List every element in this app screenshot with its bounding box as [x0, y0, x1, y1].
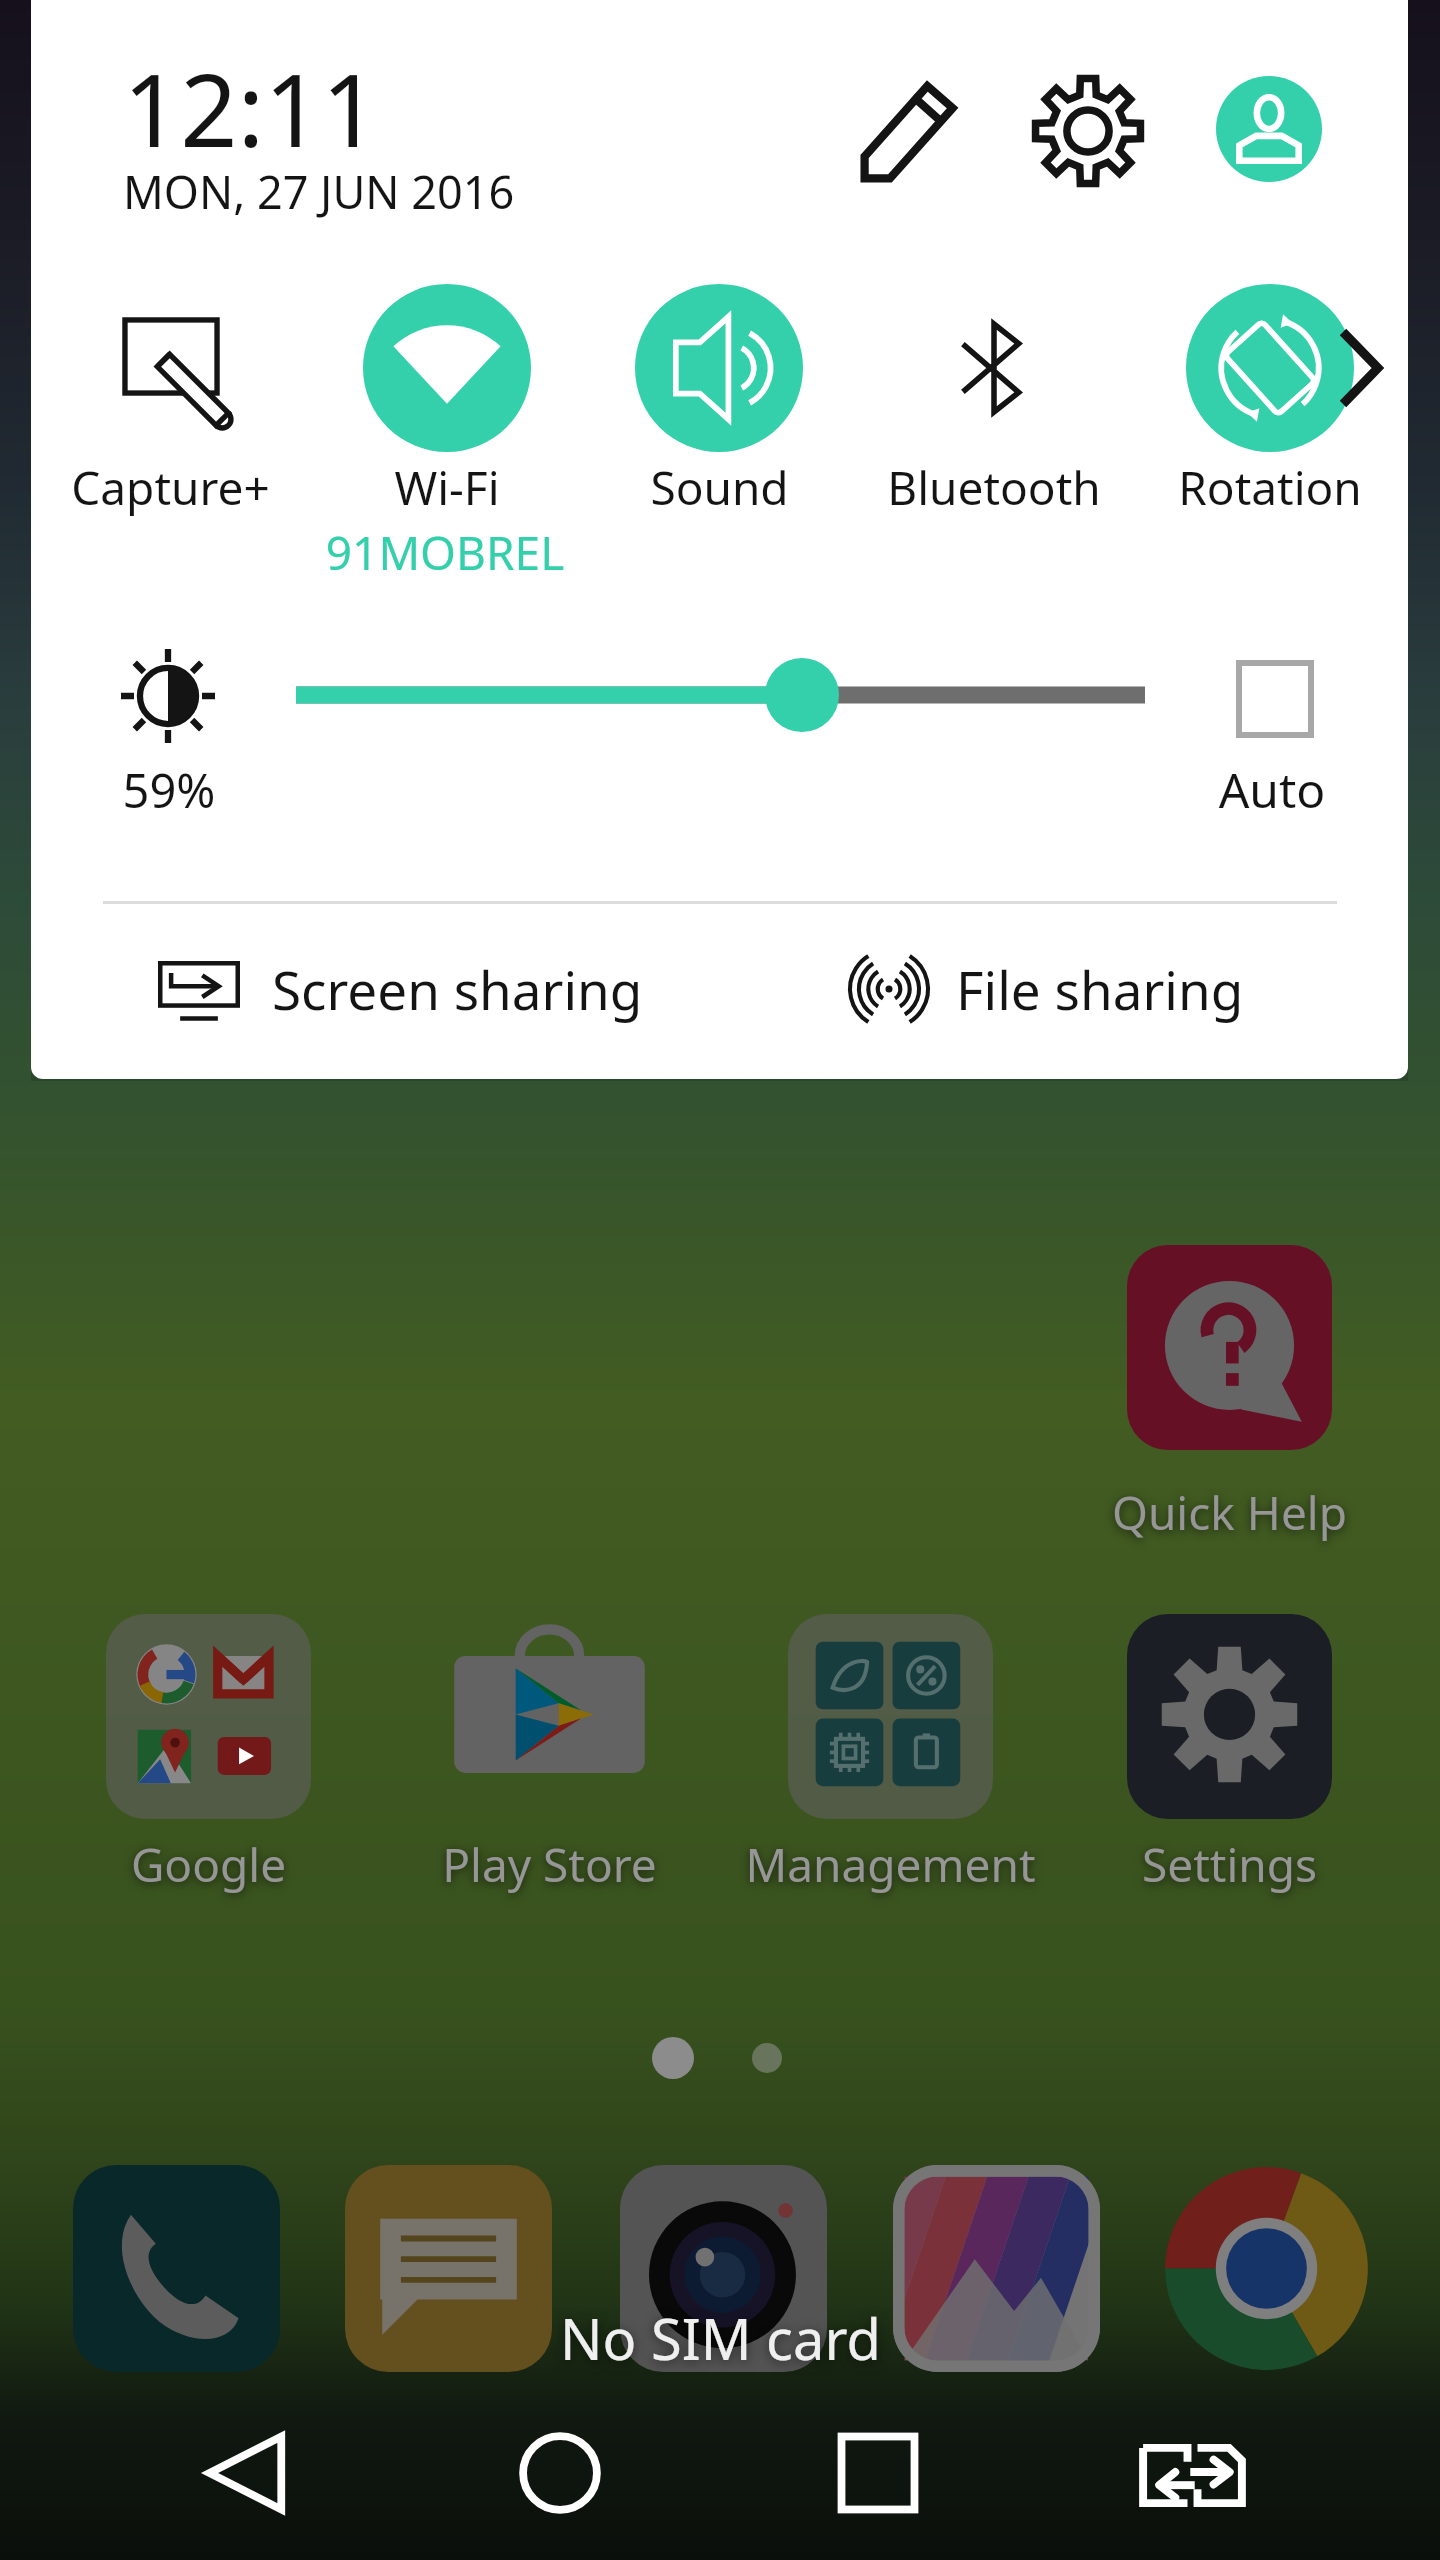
button[interactable]: Google [106, 1614, 311, 1893]
button[interactable]: Sound [589, 284, 849, 534]
button[interactable]: Back [165, 2392, 327, 2554]
button[interactable]: Messaging [345, 2165, 552, 2372]
staticText: No SIM card [560, 2300, 881, 2376]
staticText: Settings [1007, 1833, 1440, 1896]
button[interactable]: Settings [1031, 74, 1145, 188]
staticText: File sharing [956, 953, 1244, 1025]
staticText: Google [0, 1833, 431, 1896]
button[interactable]: Capture+ [40, 284, 300, 534]
staticText: Sound [650, 456, 789, 519]
button[interactable]: More settings [1333, 325, 1385, 411]
staticText: Play Store [327, 1833, 772, 1896]
staticText: 12:11 [123, 40, 379, 176]
button[interactable]: File sharing [821, 930, 1361, 1050]
staticText: Management [668, 1833, 1113, 1896]
button[interactable]: Settings [1127, 1614, 1332, 1893]
staticText: MON, 27 JUN 2016 [123, 161, 515, 222]
staticText: Screen sharing [272, 953, 643, 1025]
button[interactable]: Play Store [447, 1614, 652, 1893]
staticText: 91MOBREL [315, 521, 575, 584]
button[interactable]: Dual window [1097, 2386, 1288, 2560]
button[interactable]: Edit quick settings [858, 75, 968, 185]
staticText: Bluetooth [887, 456, 1101, 519]
staticText: Wi-Fi [394, 456, 500, 519]
button[interactable]: Bluetooth [864, 284, 1124, 534]
button[interactable]: Screen sharing [126, 930, 766, 1050]
staticText: Rotation [1178, 456, 1362, 519]
button[interactable]: Home [479, 2392, 641, 2554]
button[interactable]: User profile [1216, 76, 1322, 182]
button[interactable]: Phone [73, 2165, 280, 2372]
button[interactable]: Wi-Fi [317, 284, 577, 534]
staticText: Auto [1172, 757, 1372, 822]
button[interactable]: Auto brightness [1216, 640, 1328, 752]
button[interactable]: Camera [620, 2165, 827, 2372]
button[interactable]: Gallery [893, 2165, 1100, 2372]
staticText: Capture+ [71, 456, 270, 519]
button[interactable]: Chrome [1163, 2165, 1370, 2372]
button[interactable]: Brightness [246, 635, 1196, 755]
staticText: Quick Help [1007, 1481, 1440, 1544]
button[interactable]: Rotation [1140, 284, 1400, 534]
button[interactable]: Quick Help [1127, 1245, 1332, 1541]
button[interactable]: Recents [797, 2392, 959, 2554]
staticText: 59% [69, 758, 269, 822]
button[interactable]: Management [788, 1614, 993, 1893]
